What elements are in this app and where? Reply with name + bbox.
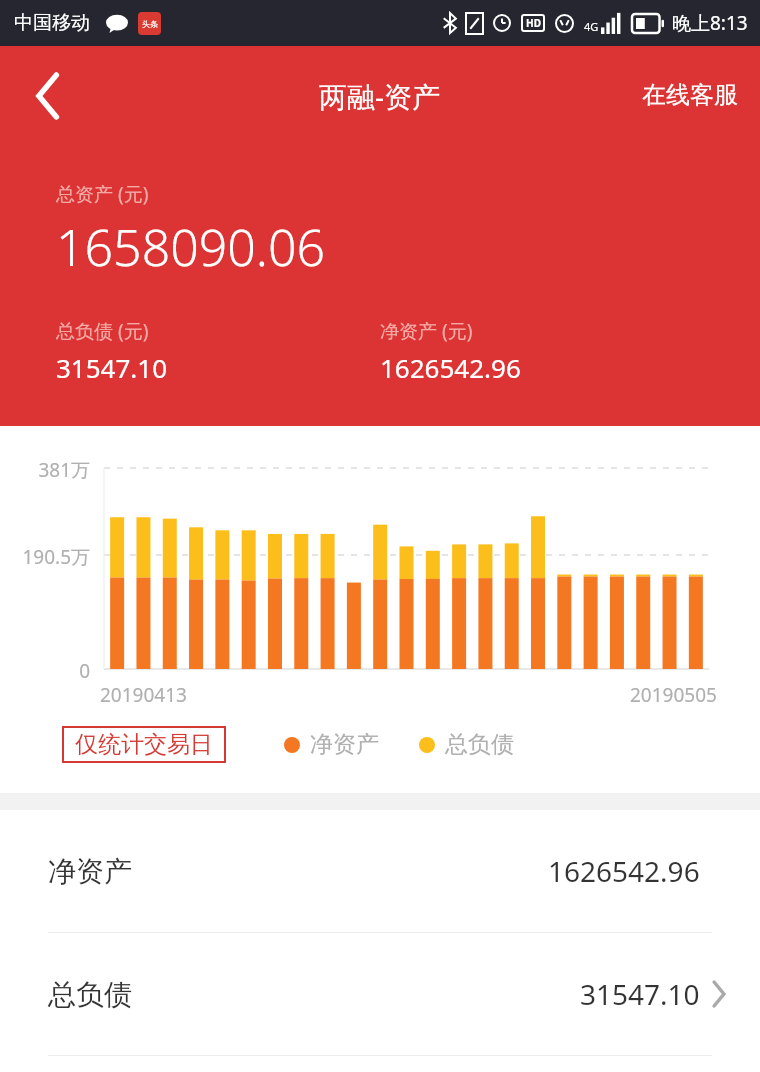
button[interactable]: 仅统计交易日 — [62, 726, 226, 763]
staticText: 31547.10 — [56, 350, 168, 385]
staticText: 仅统计交易日 — [75, 730, 213, 759]
staticText: 总负债 — [48, 977, 132, 1012]
button[interactable]: 返回 — [12, 60, 84, 132]
staticText: 在线客服 — [642, 80, 738, 110]
staticText: 1626542.96 — [380, 350, 521, 385]
staticText: 头条 — [142, 19, 158, 29]
staticText: 381万 — [12, 457, 90, 483]
button[interactable]: 总负债 — [0, 933, 760, 1055]
staticText: 净资产 — [48, 854, 132, 889]
staticText: 0 — [12, 658, 90, 684]
staticText: 总资产 (元) — [56, 181, 149, 207]
staticText: 总负债 — [445, 730, 514, 759]
button[interactable]: 在线客服 — [620, 68, 760, 122]
staticText: 两融-资产 — [319, 77, 441, 115]
staticText: 晚上8:13 — [672, 10, 748, 36]
staticText: 净资产 (元) — [380, 318, 473, 344]
staticText: 中国移动 — [14, 11, 90, 35]
staticText: HD — [526, 16, 541, 30]
staticText: 20190413 — [100, 682, 187, 708]
button[interactable]: 净资产 — [0, 810, 760, 932]
staticText: 1658090.06 — [56, 213, 326, 281]
staticText: 190.5万 — [4, 544, 90, 570]
staticText: 31547.10 — [580, 975, 700, 1013]
staticText: 总负债 (元) — [56, 318, 149, 344]
staticText: 4G — [584, 19, 599, 34]
staticText: 净资产 — [310, 730, 379, 759]
staticText: 20190505 — [630, 682, 717, 708]
staticText: 1626542.96 — [548, 852, 700, 890]
